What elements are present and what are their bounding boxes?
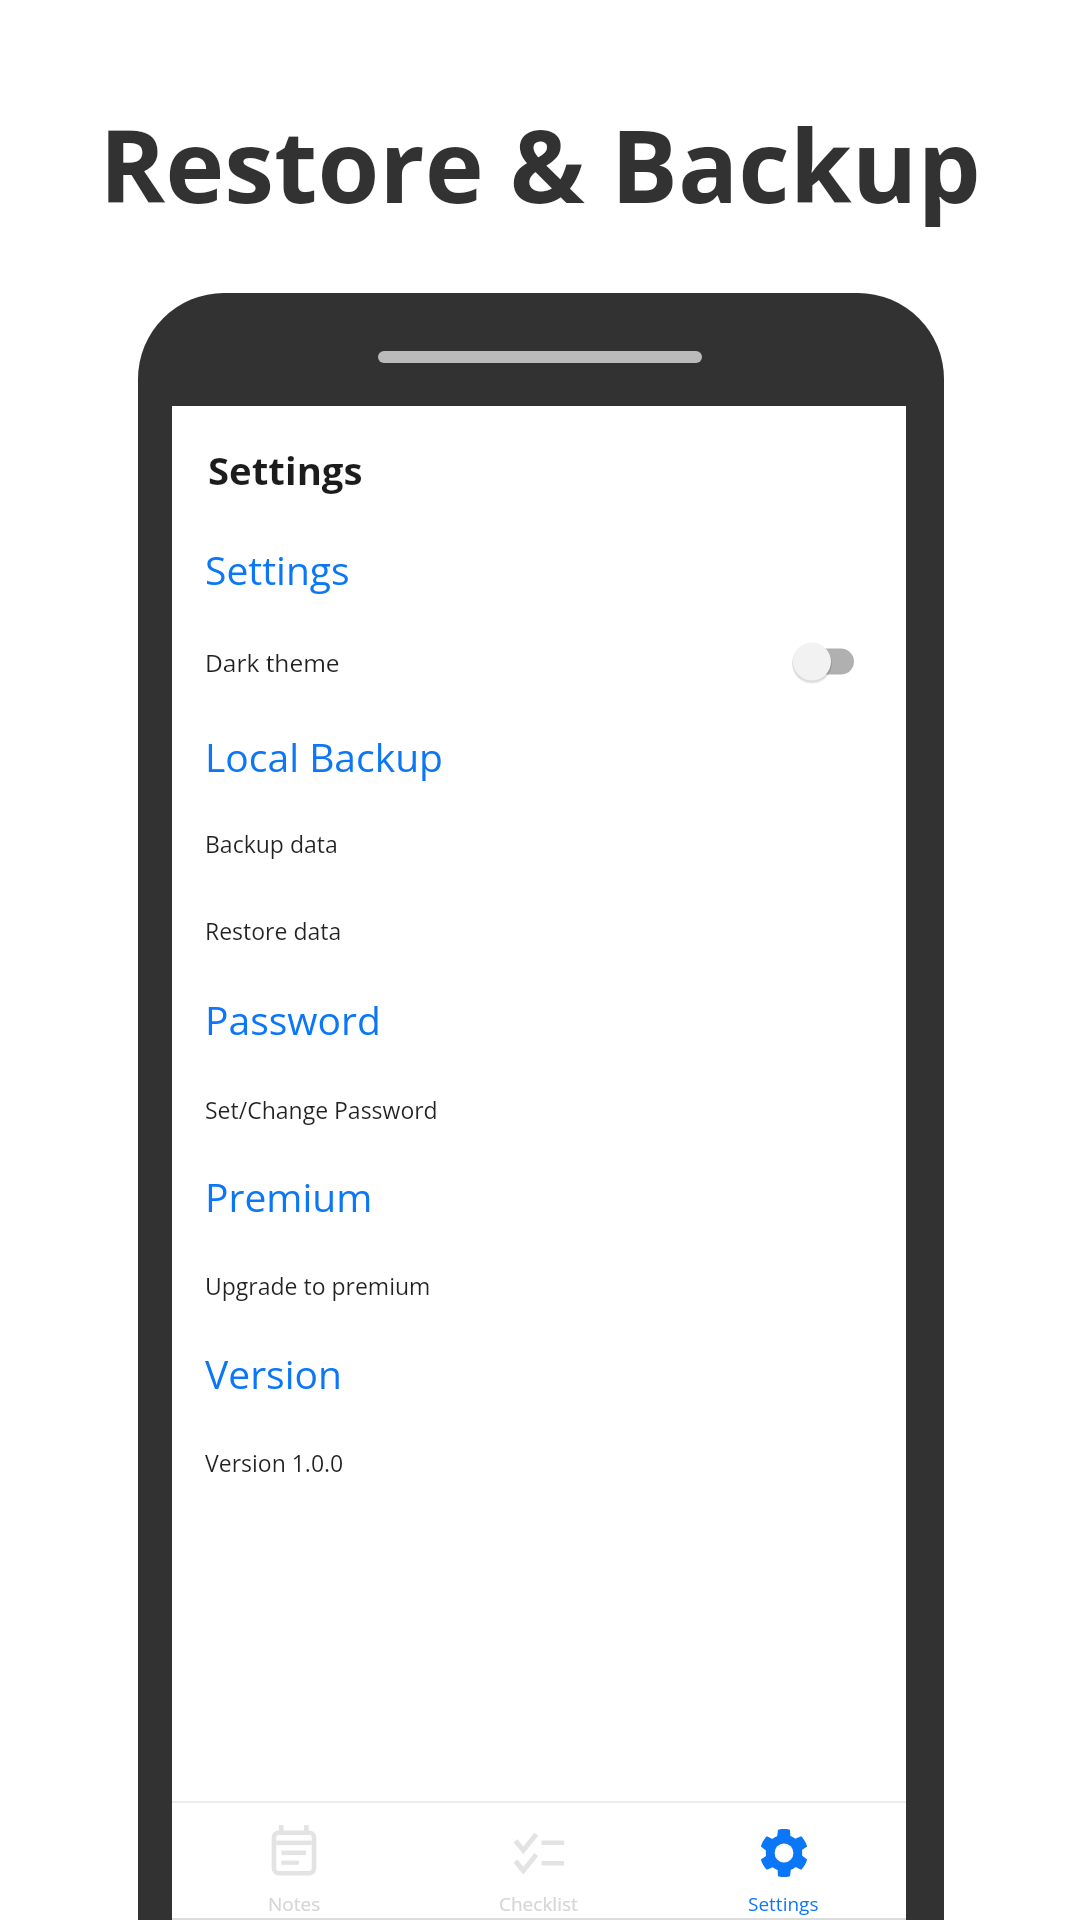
staticText: Version 1.0.0 xyxy=(205,1447,344,1478)
button[interactable]: Notes xyxy=(172,1803,416,1867)
button[interactable]: Settings xyxy=(661,1803,906,1867)
staticText: Settings xyxy=(205,543,350,596)
staticText: Settings xyxy=(748,1891,819,1917)
button[interactable]: Dark theme xyxy=(172,622,906,696)
button[interactable]: Checklist xyxy=(416,1803,661,1867)
button[interactable]: Upgrade to premium xyxy=(172,1248,906,1318)
staticText: Notes xyxy=(268,1891,321,1917)
button[interactable]: Backup data xyxy=(172,806,906,876)
button[interactable]: Version 1.0.0 xyxy=(172,1425,906,1495)
staticText: Settings xyxy=(208,444,363,496)
staticText: Version xyxy=(205,1347,342,1400)
staticText: Local Backup xyxy=(205,730,443,783)
staticText: Upgrade to premium xyxy=(205,1270,431,1301)
staticText: Password xyxy=(205,993,381,1046)
staticText: Dark theme xyxy=(205,646,340,679)
staticText: Backup data xyxy=(205,828,338,859)
staticText: Checklist xyxy=(499,1891,578,1917)
staticText: Restore data xyxy=(205,915,342,946)
staticText: Restore & Backup xyxy=(0,96,1080,232)
staticText: Set/Change Password xyxy=(205,1094,438,1125)
button[interactable]: Restore data xyxy=(172,893,906,963)
staticText: Premium xyxy=(205,1170,373,1223)
button[interactable]: Set/Change Password xyxy=(172,1072,906,1142)
